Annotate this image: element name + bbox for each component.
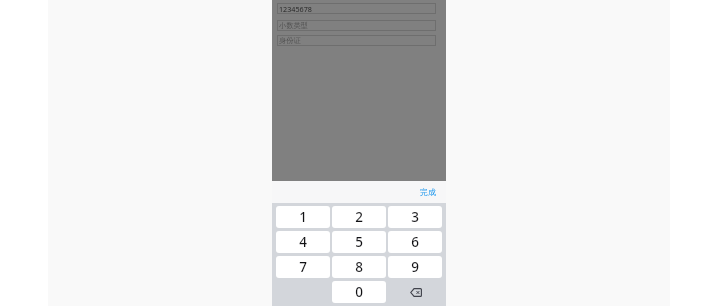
staticText: 7 — [299, 258, 307, 276]
button[interactable]: Backspace — [388, 281, 442, 303]
button[interactable]: 2 — [332, 206, 386, 228]
staticText: 4 — [299, 233, 307, 251]
button[interactable]: 1 — [276, 206, 330, 228]
button[interactable]: 完成 — [412, 183, 446, 201]
staticText: 完成 — [420, 187, 436, 197]
staticText: 8 — [355, 258, 363, 276]
button[interactable]: 5 — [332, 231, 386, 253]
button[interactable]: 4 — [276, 231, 330, 253]
staticText: 2 — [355, 208, 363, 226]
button[interactable]: 12345678 — [277, 3, 436, 14]
staticText: 0 — [355, 283, 363, 301]
staticText: 6 — [411, 233, 419, 251]
staticText: 1 — [299, 208, 307, 226]
button[interactable]: 7 — [276, 256, 330, 278]
button[interactable]: 身份证 — [277, 35, 436, 46]
staticText: 12345678 — [279, 4, 312, 14]
button[interactable]: 0 — [332, 281, 386, 303]
staticText: 3 — [411, 208, 419, 226]
staticText: 身份证 — [279, 36, 301, 45]
staticText: 9 — [411, 258, 419, 276]
button[interactable]: 9 — [388, 256, 442, 278]
staticText: 5 — [355, 233, 363, 251]
button[interactable]: 3 — [388, 206, 442, 228]
staticText: 小数类型 — [279, 21, 308, 30]
button[interactable]: 8 — [332, 256, 386, 278]
button[interactable]: 6 — [388, 231, 442, 253]
button[interactable]: 小数类型 — [277, 20, 436, 31]
